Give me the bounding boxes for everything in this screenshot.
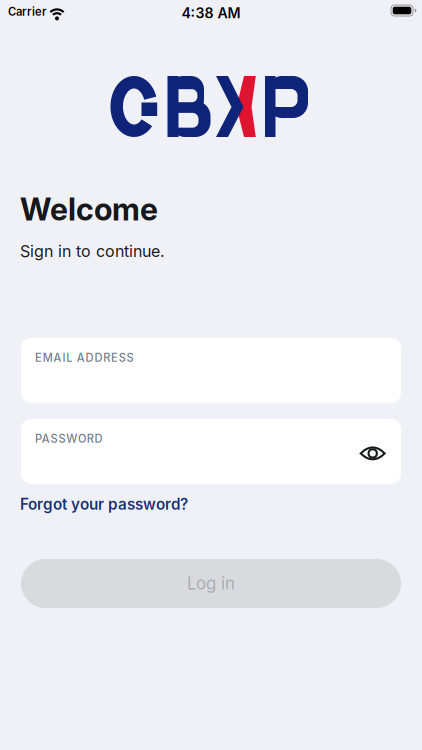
staticText: Carrier: [8, 5, 46, 19]
staticText: Welcome: [20, 190, 158, 228]
button[interactable]: PASSWORD: [21, 419, 401, 484]
staticText: PASSWORD: [35, 432, 103, 445]
button[interactable]: EMAIL ADDRESS: [21, 338, 401, 403]
staticText: EMAIL ADDRESS: [35, 351, 134, 364]
button[interactable]: Log in: [21, 559, 401, 608]
staticText: 4:38 AM: [181, 5, 240, 22]
staticText: Sign in to continue.: [20, 241, 165, 261]
button[interactable]: [355, 437, 393, 469]
button[interactable]: Forgot your password?: [20, 495, 188, 513]
staticText: Log in: [187, 573, 235, 594]
staticText: Forgot your password?: [20, 495, 188, 513]
